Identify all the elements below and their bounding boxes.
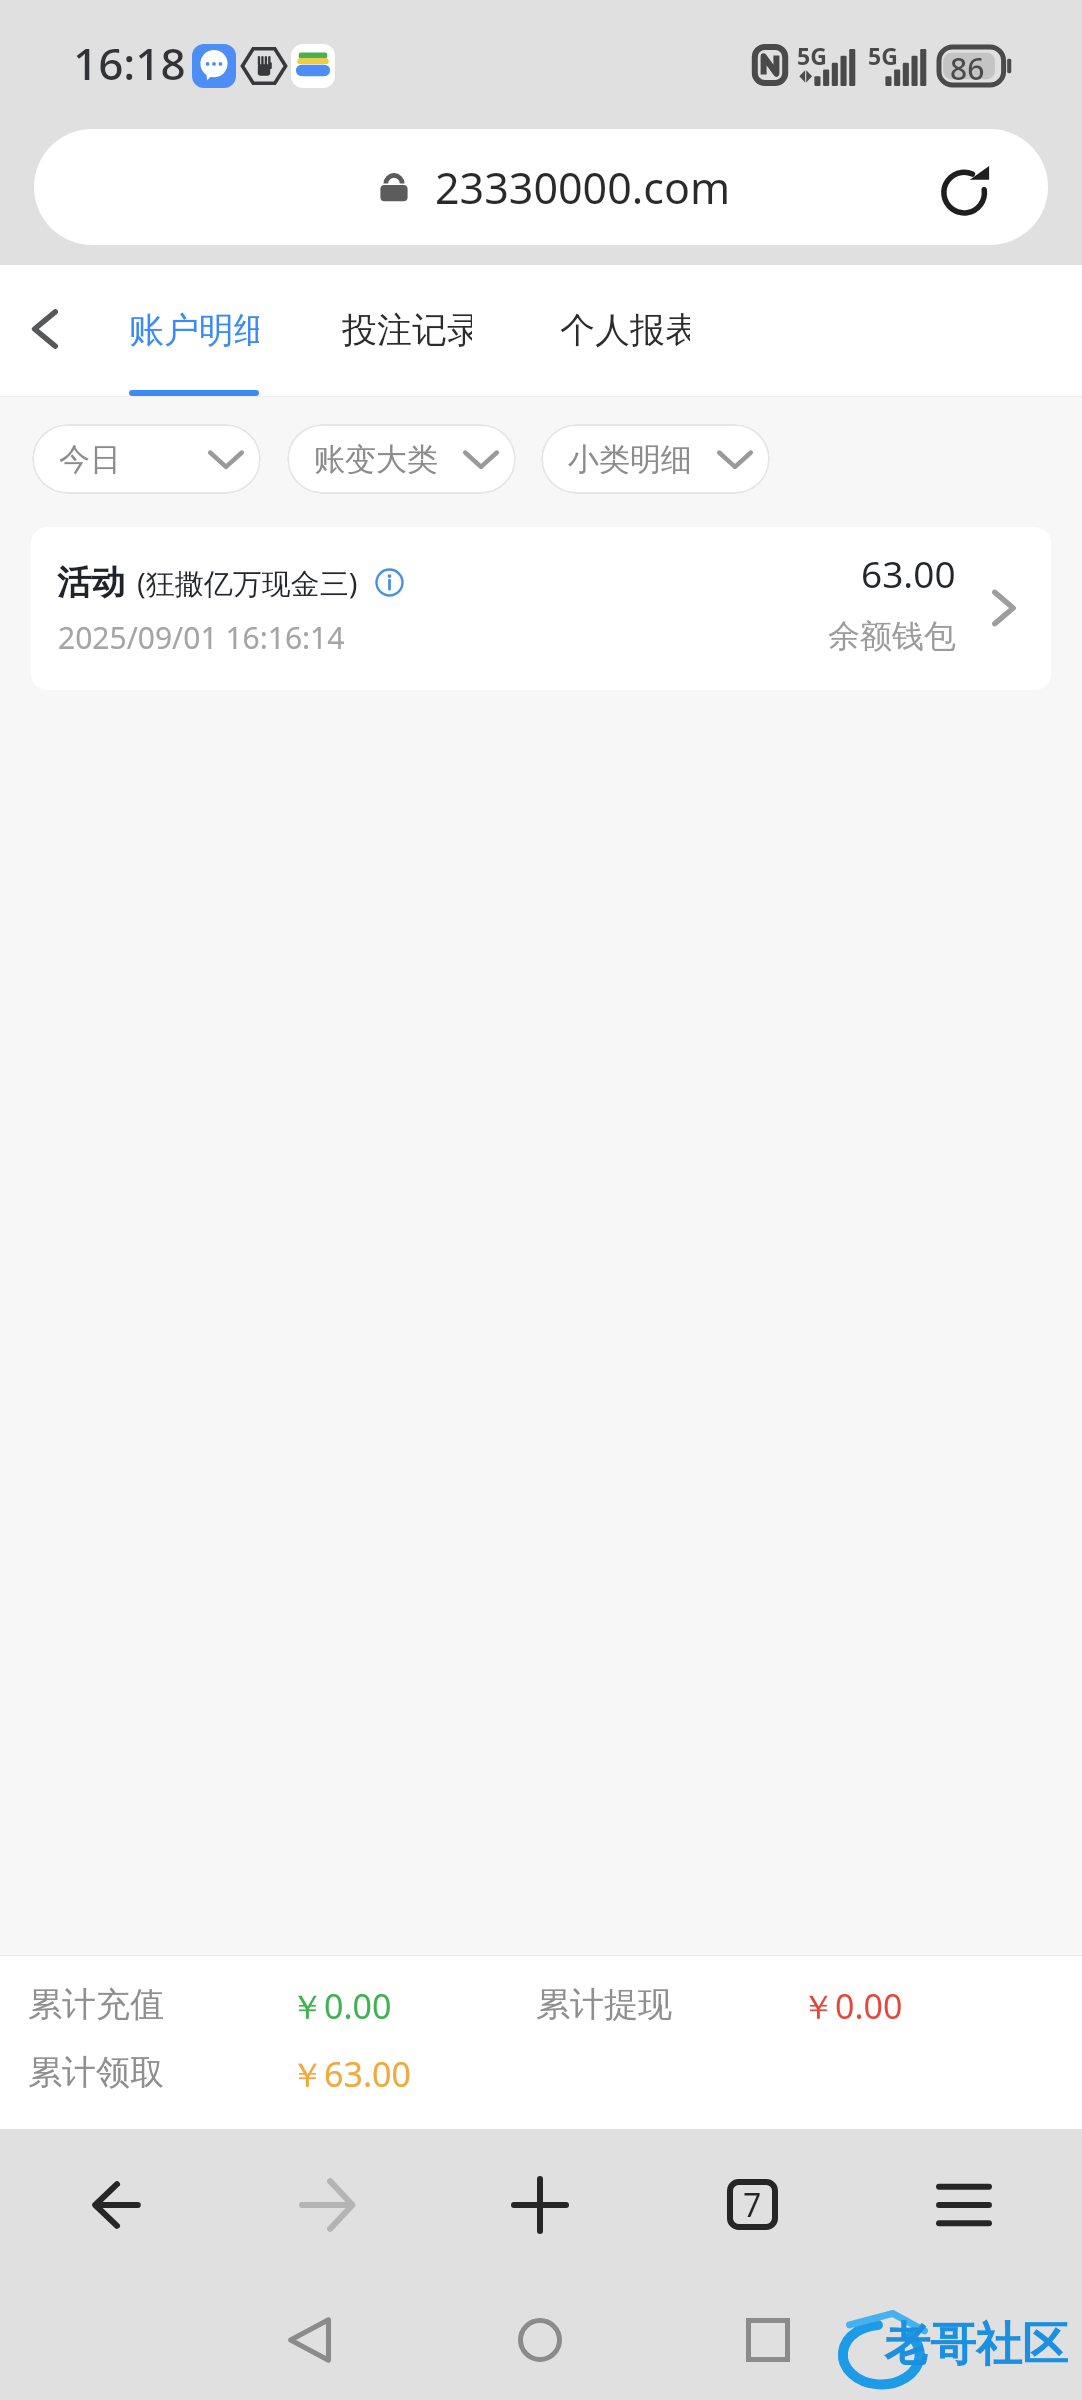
button[interactable]: 23330000.com xyxy=(34,129,1048,245)
staticText: 账户明细 xyxy=(129,308,259,352)
staticText: 23330000.com xyxy=(435,158,731,217)
staticText: 累计领取 xyxy=(28,2051,164,2094)
button[interactable]: Tabs xyxy=(672,2129,832,2280)
button[interactable]: Reload xyxy=(912,132,1022,245)
staticText: 5G xyxy=(797,40,827,71)
button[interactable]: 小类明细 xyxy=(568,424,753,494)
button[interactable]: 个人报表 xyxy=(560,265,690,397)
staticText: 小类明细 xyxy=(568,440,692,479)
button[interactable]: New tab xyxy=(460,2129,620,2280)
button[interactable]: 账变大类 xyxy=(314,424,499,494)
button[interactable]: Recents xyxy=(708,2280,828,2400)
staticText: ￥63.00 xyxy=(290,2051,411,2097)
button[interactable]: 投注记录 xyxy=(342,265,472,397)
staticText: ￥0.00 xyxy=(801,1983,903,2029)
staticText: 今日 xyxy=(59,440,121,479)
staticText: 86 xyxy=(950,48,985,88)
button[interactable]: 今日 xyxy=(59,424,244,494)
staticText: 账变大类 xyxy=(314,440,438,479)
button[interactable]: Home xyxy=(480,2280,600,2400)
button[interactable]: Back xyxy=(250,2280,370,2400)
staticText: 老哥社区 xyxy=(884,2316,1068,2374)
staticText: 16:18 xyxy=(73,33,186,93)
staticText: ￥0.00 xyxy=(290,1983,392,2029)
button[interactable]: Back xyxy=(0,265,104,397)
staticText: 活动 xyxy=(57,561,125,604)
staticText: 累计提现 xyxy=(536,1983,672,2026)
staticText: 7 xyxy=(743,2183,762,2227)
staticText: (狂撒亿万现金三) xyxy=(137,563,358,603)
button[interactable]: Forward xyxy=(248,2129,408,2280)
staticText: 余额钱包 xyxy=(828,616,956,656)
staticText: 5G xyxy=(868,40,898,71)
button[interactable]: 活动 xyxy=(31,527,1051,690)
staticText: 累计充值 xyxy=(28,1983,164,2026)
staticText: 个人报表 xyxy=(560,308,690,352)
button[interactable]: 账户明细 xyxy=(129,265,259,397)
staticText: 2025/09/01 16:16:14 xyxy=(58,617,345,658)
staticText: 投注记录 xyxy=(342,308,472,352)
staticText: 63.00 xyxy=(861,548,956,598)
button[interactable]: Back xyxy=(37,2129,197,2280)
button[interactable]: Menu xyxy=(884,2129,1044,2280)
